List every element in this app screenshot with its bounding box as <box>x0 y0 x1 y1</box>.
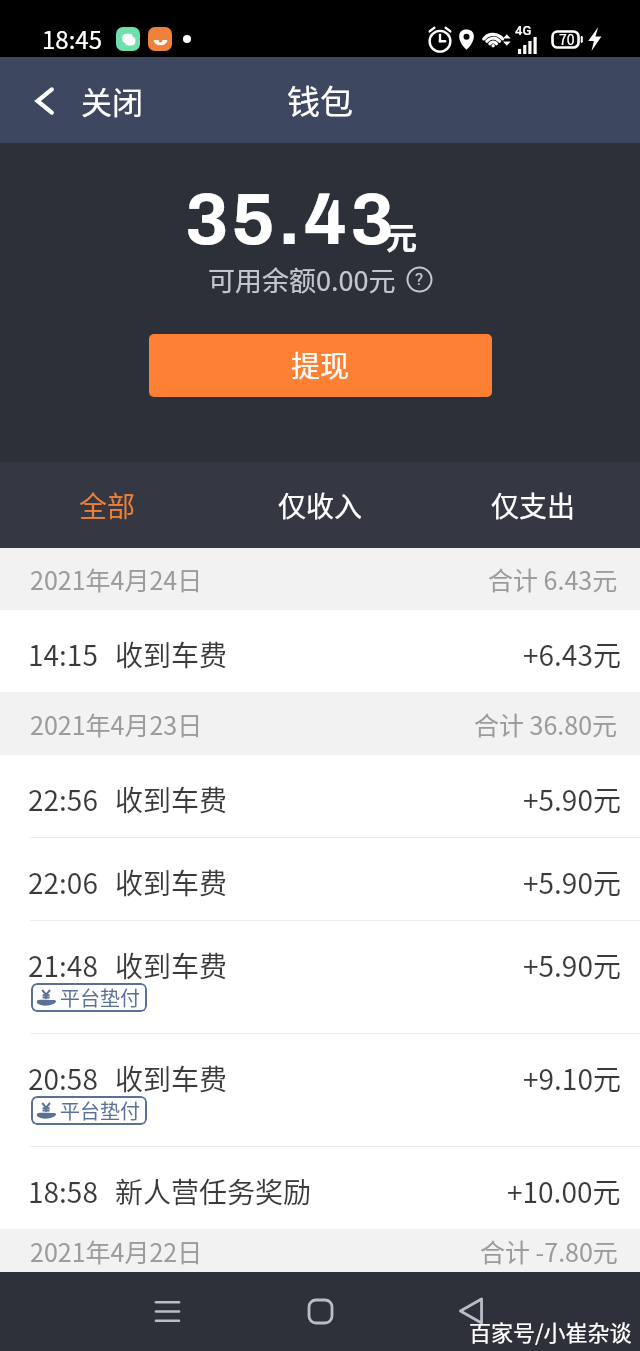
staticText: 关闭 <box>81 78 143 123</box>
staticText: 18:45 <box>42 21 102 56</box>
staticText: ? <box>415 269 424 289</box>
staticText: 元 <box>386 213 417 258</box>
staticText: 平台垫付 <box>60 1096 140 1125</box>
button[interactable]: 提现 <box>149 334 492 397</box>
staticText: +5.90元 <box>523 945 621 986</box>
staticText: 合计 -7.80元 <box>480 1233 618 1269</box>
staticText: 14:15 <box>28 634 98 675</box>
staticText: +10.00元 <box>507 1171 621 1212</box>
staticText: 21:48 <box>28 945 98 986</box>
staticText: 收到车费 <box>115 862 228 903</box>
staticText: 仅支出 <box>491 485 576 526</box>
button[interactable]: 22:06 <box>0 837 640 920</box>
staticText: +5.90元 <box>523 862 621 903</box>
button[interactable]: Back <box>28 72 153 129</box>
staticText: 百家号/小崔杂谈 <box>469 1315 632 1347</box>
staticText: +6.43元 <box>523 634 621 675</box>
staticText: 钱包 <box>287 76 353 124</box>
button[interactable]: 仅收入 <box>214 462 427 548</box>
staticText: 合计 6.43元 <box>488 561 618 597</box>
staticText: 收到车费 <box>115 779 228 820</box>
button[interactable]: Home <box>290 1281 350 1341</box>
button[interactable]: 全部 <box>0 462 214 548</box>
staticText: 全部 <box>79 485 136 526</box>
staticText: 20:58 <box>28 1058 98 1099</box>
staticText: 收到车费 <box>115 1058 228 1099</box>
staticText: 提现 <box>291 343 350 385</box>
staticText: 平台垫付 <box>60 983 140 1012</box>
staticText: 70 <box>559 29 575 49</box>
staticText: 2021年4月24日 <box>30 561 203 597</box>
staticText: 新人营任务奖励 <box>115 1171 312 1212</box>
button[interactable]: 18:58 <box>0 1146 640 1229</box>
staticText: 22:56 <box>28 779 98 820</box>
staticText: 仅收入 <box>278 485 363 526</box>
staticText: 可用余额0.00元 <box>208 260 396 299</box>
staticText: 2021年4月22日 <box>30 1233 203 1269</box>
staticText: 收到车费 <box>115 945 228 986</box>
staticText: +9.10元 <box>523 1058 621 1099</box>
staticText: +5.90元 <box>523 779 621 820</box>
staticText: 4G <box>515 23 532 38</box>
button[interactable]: 20:58 <box>0 1033 640 1146</box>
staticText: 合计 36.80元 <box>474 706 618 742</box>
staticText: 35.43 <box>185 180 397 259</box>
button[interactable]: Recent apps <box>137 1281 197 1341</box>
staticText: 22:06 <box>28 862 98 903</box>
staticText: 2021年4月23日 <box>30 706 203 742</box>
other: Back <box>28 84 62 118</box>
button[interactable]: 21:48 <box>0 920 640 1033</box>
button[interactable]: 14:15 <box>0 610 640 692</box>
button[interactable]: 22:56 <box>0 755 640 837</box>
button[interactable]: Back <box>441 1281 501 1341</box>
button[interactable]: Help <box>406 266 433 293</box>
staticText: 18:58 <box>28 1171 98 1212</box>
staticText: 收到车费 <box>115 634 228 675</box>
button[interactable]: 仅支出 <box>427 462 640 548</box>
